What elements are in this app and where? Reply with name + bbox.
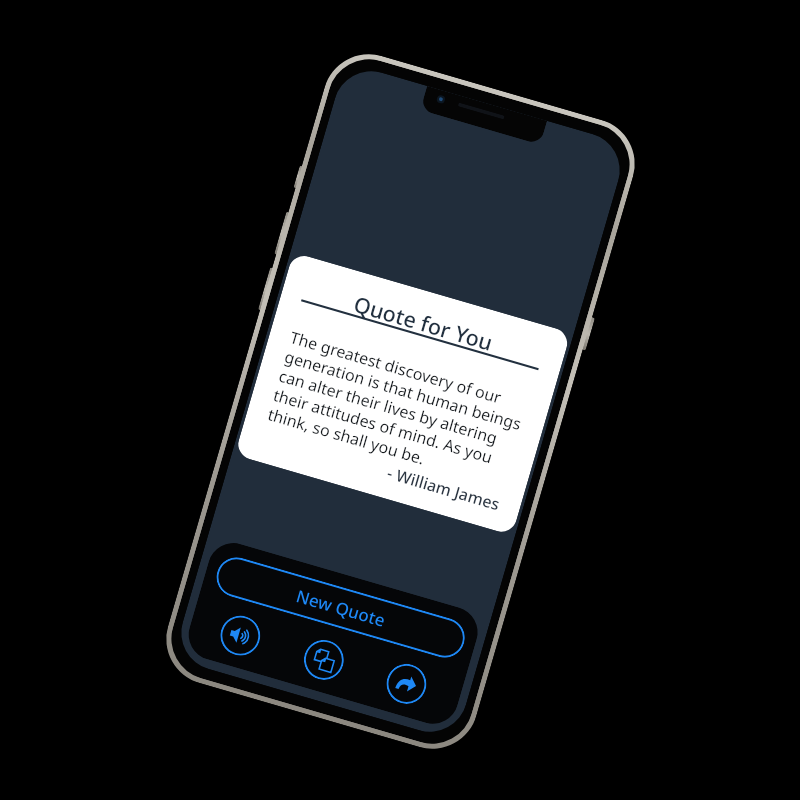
staticText: The greatest discovery of our generation… [265, 326, 531, 493]
button[interactable]: Copy quote [299, 635, 349, 685]
staticText: Quote for You [301, 274, 546, 371]
staticText: - William James [259, 425, 502, 515]
button[interactable]: Share quote [382, 659, 431, 709]
staticText: New Quote [294, 584, 388, 632]
button[interactable]: New Quote [212, 552, 470, 662]
button[interactable]: Quote for You [234, 252, 571, 535]
button[interactable]: Speak quote [215, 611, 265, 660]
